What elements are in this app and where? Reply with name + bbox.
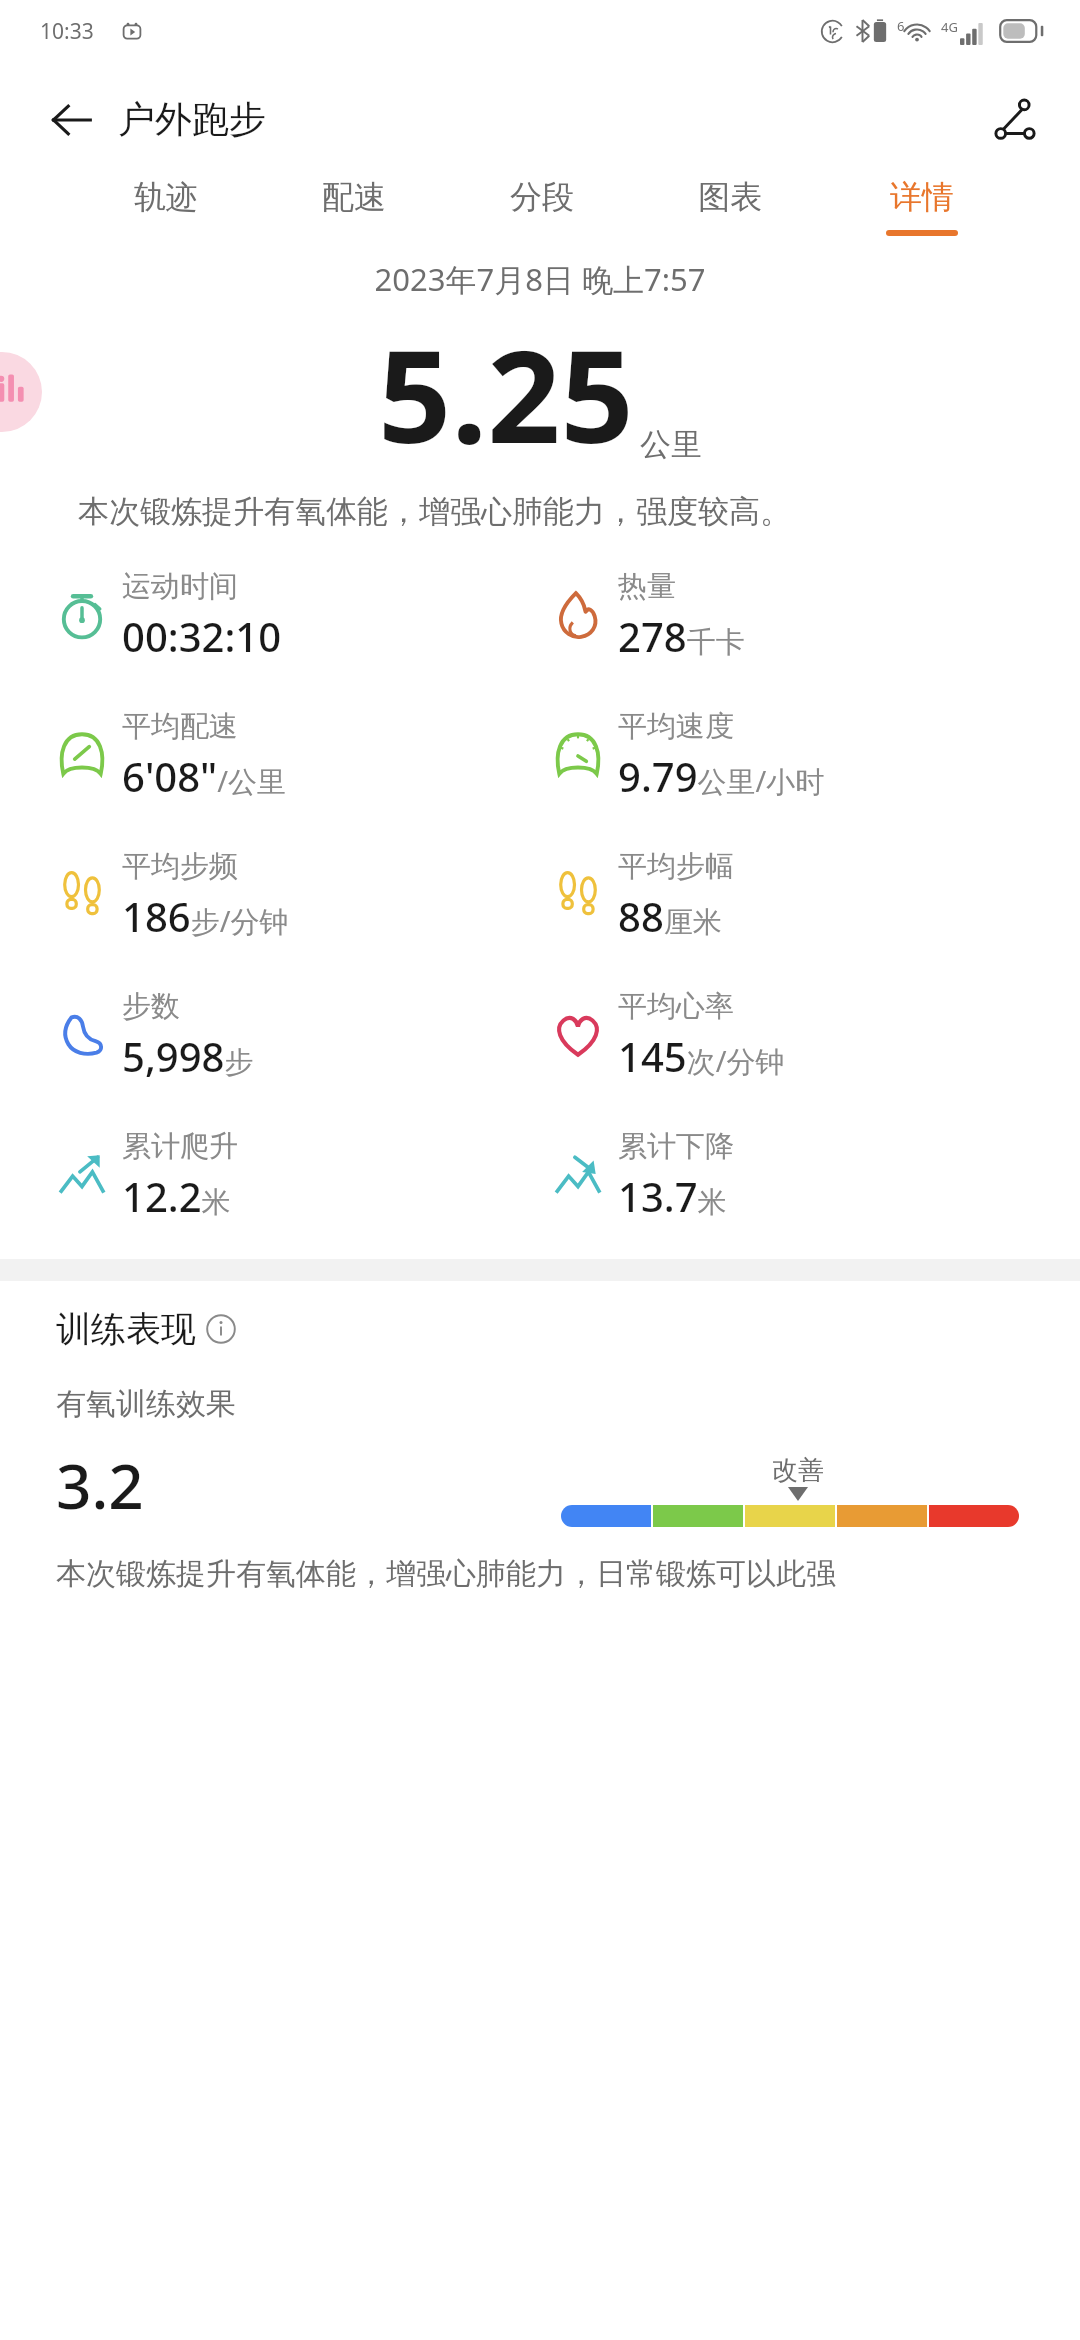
button[interactable]: Back	[40, 89, 102, 151]
staticText: 图表	[698, 177, 762, 217]
staticText: 278千卡	[618, 609, 745, 663]
staticText: 2023年7月8日 晚上7:57	[0, 258, 1080, 300]
staticText: 平均心率	[618, 988, 734, 1025]
staticText: 5,998步	[122, 1029, 254, 1083]
staticText: 详情	[890, 177, 954, 217]
staticText: 分段	[510, 177, 574, 217]
staticText: 累计下降	[618, 1128, 734, 1165]
button[interactable]: 平均步幅	[552, 825, 1080, 965]
button[interactable]	[0, 352, 42, 432]
staticText: 改善	[772, 1454, 824, 1487]
button[interactable]: 热量	[552, 545, 1080, 685]
staticText: 累计爬升	[122, 1128, 238, 1165]
staticText: 4G	[941, 18, 958, 36]
button[interactable]: 累计爬升	[56, 1105, 540, 1245]
button[interactable]: 平均心率	[552, 965, 1080, 1105]
staticText: 轨迹	[134, 177, 198, 217]
staticText: 6'08"/公里	[122, 749, 287, 803]
staticText: 户外跑步	[118, 96, 266, 143]
staticText: 9.79公里/小时	[618, 749, 825, 803]
staticText: 步数	[122, 988, 180, 1025]
staticText: 热量	[618, 568, 676, 605]
button[interactable]: 平均步频	[56, 825, 540, 965]
other: Info	[206, 1314, 236, 1344]
button[interactable]: 图表	[694, 177, 766, 236]
staticText: 本次锻炼提升有氧体能，增强心肺能力，日常锻炼可以此强	[56, 1555, 836, 1593]
button[interactable]: 平均配速	[56, 685, 540, 825]
staticText: 145次/分钟	[618, 1029, 785, 1083]
staticText: 有氧训练效果	[56, 1385, 236, 1423]
staticText: 平均步频	[122, 848, 238, 885]
staticText: 配速	[322, 177, 386, 217]
button[interactable]: 配速	[318, 177, 390, 236]
button[interactable]: 运动时间	[56, 545, 540, 685]
staticText: 6	[897, 17, 905, 35]
staticText: 12.2米	[122, 1169, 231, 1223]
button[interactable]: 累计下降	[552, 1105, 1080, 1245]
button[interactable]: 步数	[56, 965, 540, 1105]
staticText: 00:32:10	[122, 609, 282, 663]
staticText: 88厘米	[618, 889, 722, 943]
button[interactable]: 轨迹	[130, 177, 202, 236]
staticText: 运动时间	[122, 568, 238, 605]
staticText: 平均步幅	[618, 848, 734, 885]
staticText: 3.2	[56, 1443, 144, 1527]
button[interactable]: 训练表现	[56, 1307, 236, 1351]
staticText: 训练表现	[56, 1307, 196, 1351]
button[interactable]: Share	[984, 89, 1046, 151]
staticText: 186步/分钟	[122, 889, 289, 943]
staticText: 13.7米	[618, 1169, 727, 1223]
staticText: 公里	[640, 425, 702, 464]
button[interactable]: 分段	[506, 177, 578, 236]
staticText: 平均速度	[618, 708, 734, 745]
button[interactable]: 平均速度	[552, 685, 1080, 825]
staticText: 平均配速	[122, 708, 238, 745]
button[interactable]: 详情	[882, 177, 962, 236]
staticText: 10:33	[40, 17, 94, 46]
staticText: 本次锻炼提升有氧体能，增强心肺能力，强度较高。	[78, 492, 1014, 531]
staticText: 5.25	[378, 306, 634, 480]
